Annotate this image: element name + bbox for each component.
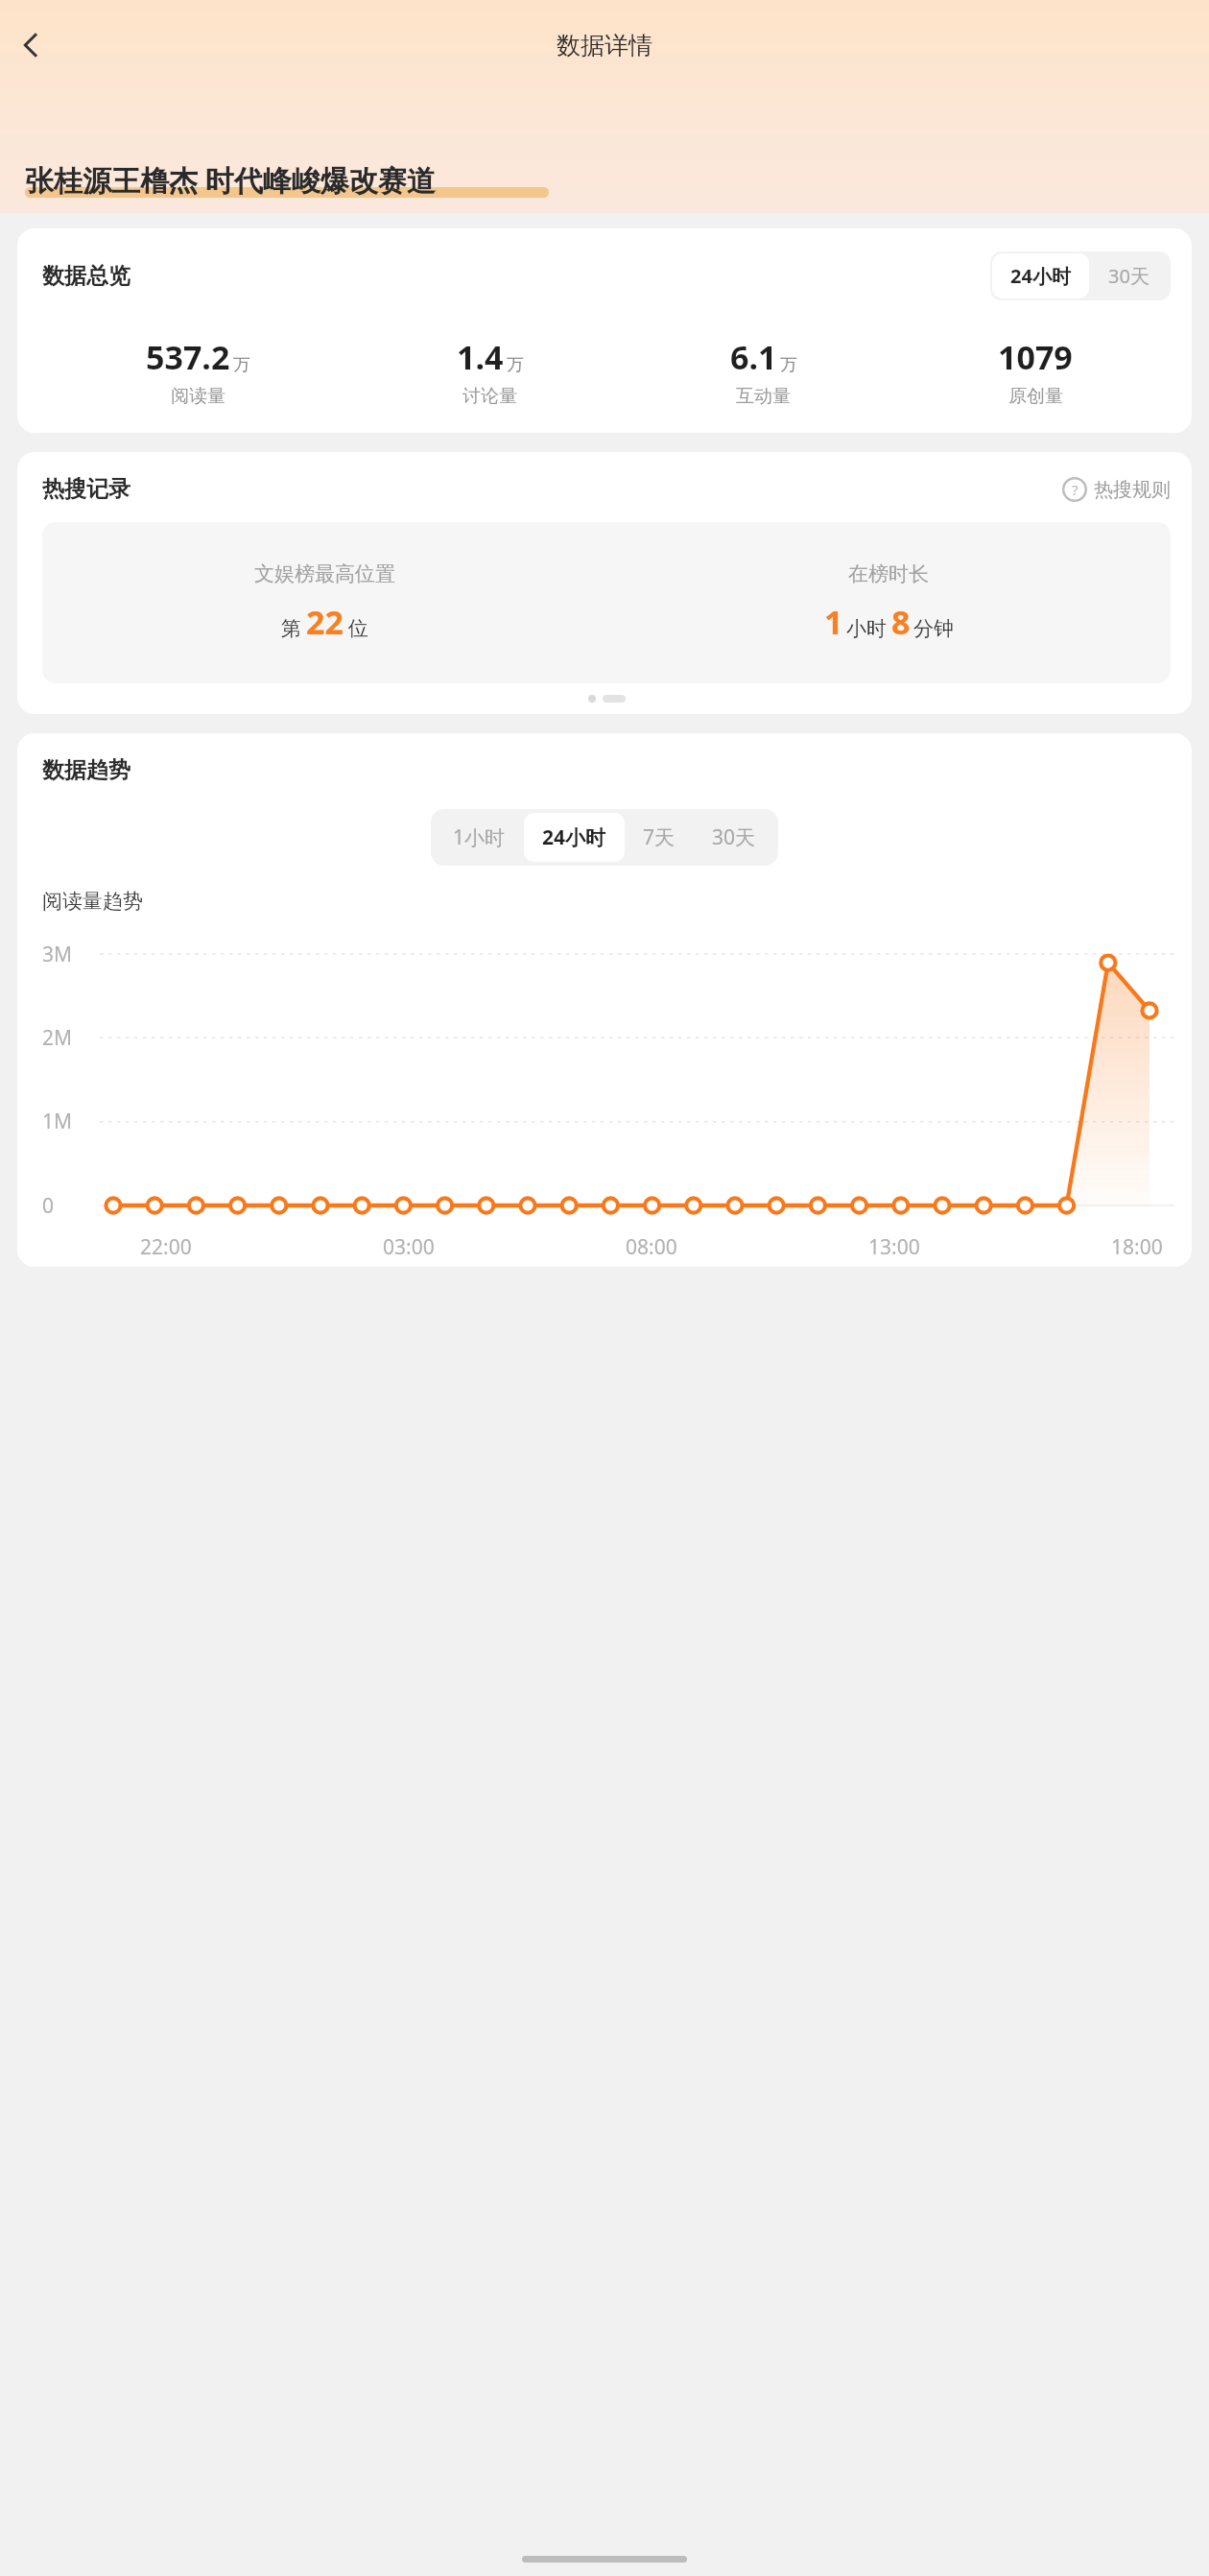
staticText: 讨论量 bbox=[462, 385, 517, 408]
staticText: 1079 bbox=[998, 335, 1073, 379]
staticText: 互动量 bbox=[736, 385, 791, 408]
button[interactable]: 30天 bbox=[694, 813, 774, 862]
staticText: 24小时 bbox=[542, 823, 606, 851]
staticText: 30天 bbox=[712, 823, 756, 851]
staticText: 03:00 bbox=[383, 1233, 435, 1261]
staticText: 0 bbox=[42, 1192, 55, 1220]
staticText: 22 bbox=[306, 600, 344, 644]
staticText: 13:00 bbox=[868, 1233, 920, 1261]
button[interactable]: ? bbox=[1062, 477, 1171, 502]
staticText: 万 bbox=[233, 354, 250, 376]
staticText: 第 bbox=[281, 616, 301, 641]
button[interactable]: 7天 bbox=[625, 813, 694, 862]
staticText: 文娱榜最高位置 bbox=[254, 561, 395, 586]
staticText: 数据总览 bbox=[42, 262, 130, 290]
staticText: 热搜记录 bbox=[42, 475, 130, 503]
staticText: 30天 bbox=[1108, 263, 1150, 289]
staticText: 7天 bbox=[643, 823, 676, 851]
staticText: 1M bbox=[42, 1108, 73, 1135]
staticText: 3M bbox=[42, 941, 73, 968]
button[interactable]: 24小时 bbox=[524, 813, 625, 862]
staticText: 1 bbox=[824, 600, 843, 644]
staticText: 万 bbox=[507, 354, 524, 376]
staticText: 原创量 bbox=[1008, 385, 1063, 408]
staticText: 阅读量趋势 bbox=[42, 889, 143, 914]
button[interactable]: 24小时 bbox=[992, 253, 1089, 298]
staticText: 张桂源王橹杰 时代峰峻爆改赛道 bbox=[25, 160, 436, 200]
staticText: 在榜时长 bbox=[848, 561, 929, 586]
staticText: 6.1 bbox=[730, 335, 777, 379]
staticText: 1小时 bbox=[453, 823, 506, 851]
staticText: 位 bbox=[348, 616, 368, 641]
staticText: 小时 bbox=[846, 616, 887, 641]
button[interactable]: Back bbox=[6, 19, 58, 71]
staticText: 1.4 bbox=[457, 335, 504, 379]
staticText: ? bbox=[1072, 480, 1079, 499]
staticText: 热搜规则 bbox=[1094, 478, 1171, 502]
staticText: 08:00 bbox=[626, 1233, 677, 1261]
staticText: 数据趋势 bbox=[42, 756, 130, 784]
staticText: 数据详情 bbox=[557, 31, 652, 60]
button[interactable]: 30天 bbox=[1089, 253, 1169, 298]
staticText: 分钟 bbox=[913, 616, 954, 641]
staticText: 8 bbox=[891, 600, 911, 644]
staticText: 万 bbox=[780, 354, 797, 376]
staticText: 24小时 bbox=[1010, 263, 1071, 289]
staticText: 22:00 bbox=[140, 1233, 192, 1261]
staticText: 2M bbox=[42, 1024, 73, 1052]
staticText: 18:00 bbox=[1111, 1233, 1163, 1261]
staticText: 阅读量 bbox=[171, 385, 225, 408]
button[interactable]: 1小时 bbox=[435, 813, 524, 862]
staticText: 537.2 bbox=[146, 335, 230, 379]
